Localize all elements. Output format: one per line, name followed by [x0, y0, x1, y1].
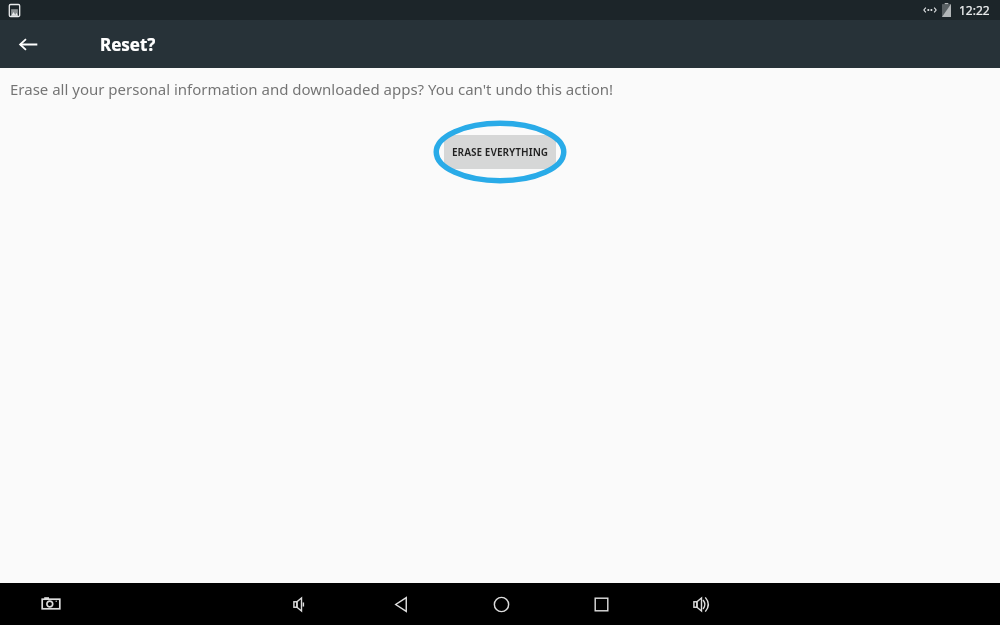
button[interactable]: Recent apps [580, 583, 622, 625]
staticText: 12:22 [959, 2, 990, 18]
button[interactable]: Volume up [680, 583, 722, 625]
button[interactable]: Back [380, 583, 422, 625]
staticText: Erase all your personal information and … [10, 79, 614, 99]
button[interactable]: Home [480, 583, 522, 625]
button[interactable]: Screenshot [30, 583, 72, 625]
button[interactable]: Volume down [280, 583, 322, 625]
staticText: Reset? [100, 33, 156, 56]
button[interactable]: ERASE EVERYTHING [444, 135, 556, 169]
button[interactable]: Back [8, 24, 48, 64]
staticText: ERASE EVERYTHING [452, 145, 548, 159]
